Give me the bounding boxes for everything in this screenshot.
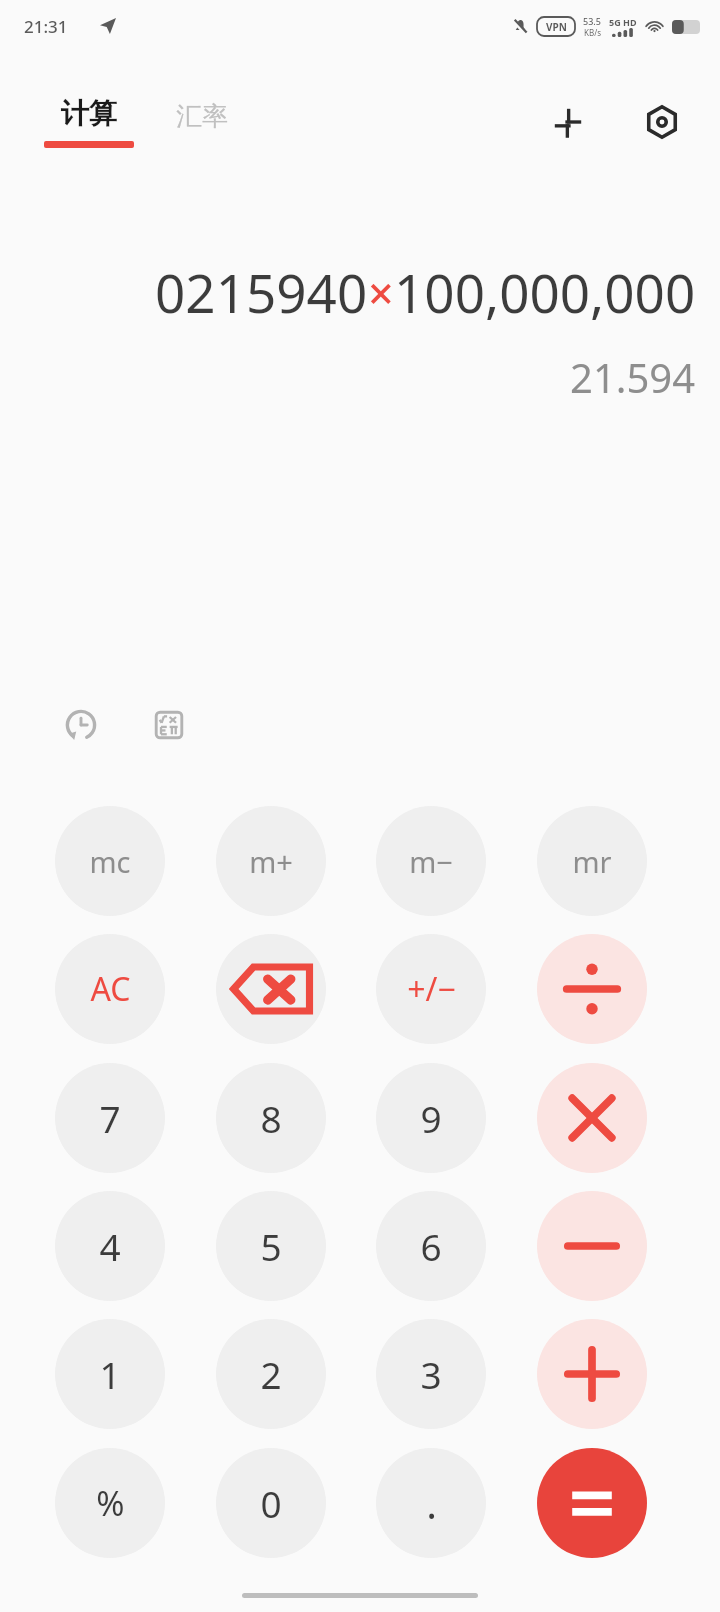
staticText: 5	[260, 1221, 282, 1271]
button[interactable]: AC	[55, 934, 165, 1044]
button[interactable]: 汇率	[176, 100, 228, 133]
staticText: .	[426, 1476, 437, 1530]
staticText: ×	[368, 262, 394, 323]
button[interactable]: mr	[537, 806, 647, 916]
staticText: +/−	[407, 967, 456, 1011]
staticText: 8	[260, 1093, 282, 1143]
button[interactable]: .	[376, 1448, 486, 1558]
staticText: VPN	[546, 20, 567, 34]
staticText: 53.5	[583, 15, 601, 27]
button[interactable]: Divide	[537, 934, 647, 1044]
button[interactable]: Scientific mode	[142, 698, 196, 752]
button[interactable]: Minus	[537, 1191, 647, 1301]
button[interactable]: 7	[55, 1063, 165, 1173]
staticText: 2	[260, 1349, 282, 1399]
staticText: %	[96, 1480, 125, 1526]
button[interactable]: 1	[55, 1319, 165, 1429]
button[interactable]: m+	[216, 806, 326, 916]
staticText: mr	[572, 842, 612, 881]
staticText: m−	[409, 842, 453, 881]
staticText: 9	[420, 1093, 442, 1143]
button[interactable]: mc	[55, 806, 165, 916]
staticText: 0215940	[155, 256, 368, 328]
staticText: KB/s	[584, 27, 601, 38]
staticText: 计算	[61, 96, 117, 131]
staticText: AC	[90, 967, 131, 1011]
staticText: 3	[420, 1349, 442, 1399]
button[interactable]: Equals	[537, 1448, 647, 1558]
staticText: 0	[260, 1478, 282, 1528]
staticText: 6	[420, 1221, 442, 1271]
button[interactable]: 0	[216, 1448, 326, 1558]
button[interactable]: Plus	[537, 1319, 647, 1429]
button[interactable]: 计算	[44, 96, 134, 148]
staticText: 100,000,000	[394, 256, 696, 328]
button[interactable]: 9	[376, 1063, 486, 1173]
button[interactable]: 6	[376, 1191, 486, 1301]
button[interactable]: Settings	[638, 98, 686, 146]
staticText: 7	[99, 1093, 121, 1143]
staticText: 5G HD	[609, 16, 637, 28]
staticText: 21.594	[570, 350, 696, 404]
button[interactable]: Layout	[544, 98, 592, 146]
staticText: 1	[99, 1349, 121, 1399]
button[interactable]: +/−	[376, 934, 486, 1044]
button[interactable]: 2	[216, 1319, 326, 1429]
button[interactable]: 8	[216, 1063, 326, 1173]
staticText: m+	[249, 842, 293, 881]
button[interactable]: Multiply	[537, 1063, 647, 1173]
button[interactable]: History	[54, 698, 108, 752]
staticText: 4	[99, 1221, 121, 1271]
button[interactable]: Delete	[216, 934, 326, 1044]
button[interactable]: 4	[55, 1191, 165, 1301]
button[interactable]: 3	[376, 1319, 486, 1429]
button[interactable]: %	[55, 1448, 165, 1558]
staticText: mc	[89, 842, 131, 881]
button[interactable]: 5	[216, 1191, 326, 1301]
staticText: 21:31	[24, 15, 68, 38]
button[interactable]: m−	[376, 806, 486, 916]
